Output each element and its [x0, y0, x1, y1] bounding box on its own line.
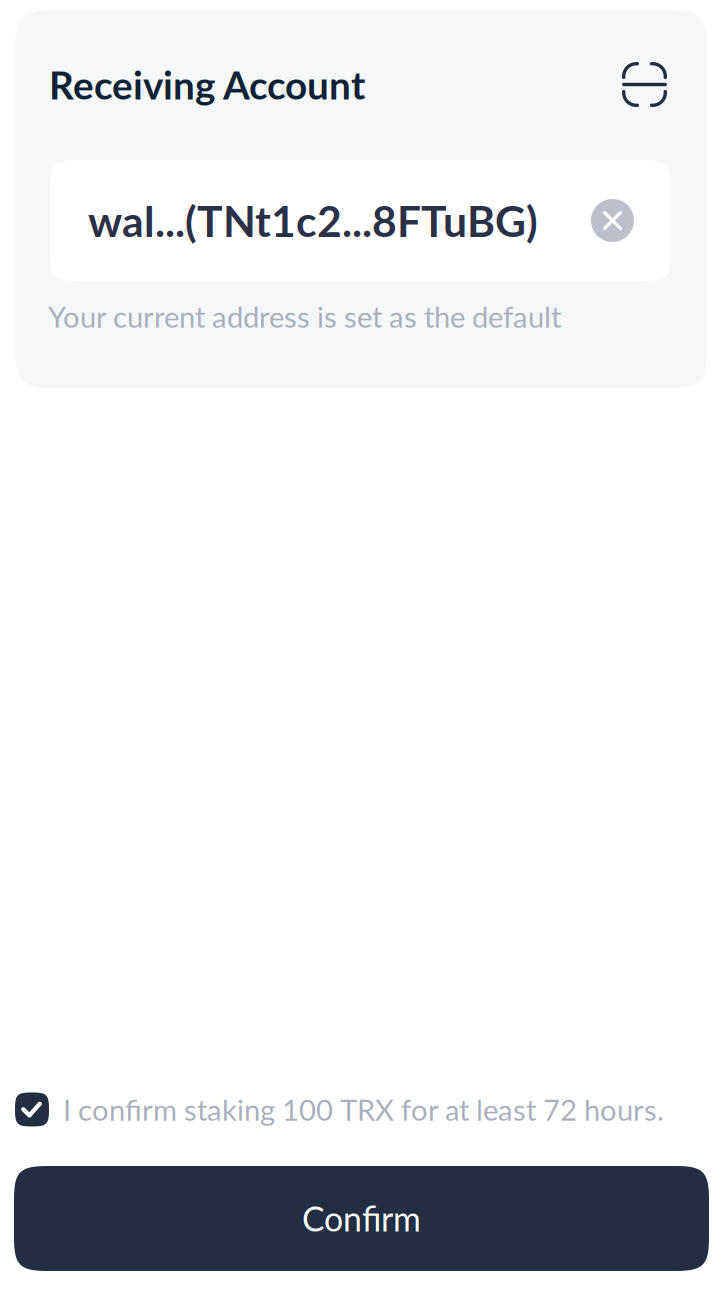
staticText: Receiving Account [49, 61, 365, 108]
button[interactable]: Confirm [14, 1166, 709, 1271]
button[interactable]: Scan address [616, 56, 673, 113]
button[interactable]: I confirm staking 100 TRX for at least 7… [0, 1088, 722, 1131]
staticText: wal...(TNt1c2...8FTuBG) [88, 195, 538, 246]
button[interactable]: Clear address [591, 199, 634, 242]
staticText: I confirm staking 100 TRX for at least 7… [63, 1092, 664, 1127]
staticText: Confirm [302, 1198, 421, 1239]
staticText: Your current address is set as the defau… [48, 299, 561, 334]
